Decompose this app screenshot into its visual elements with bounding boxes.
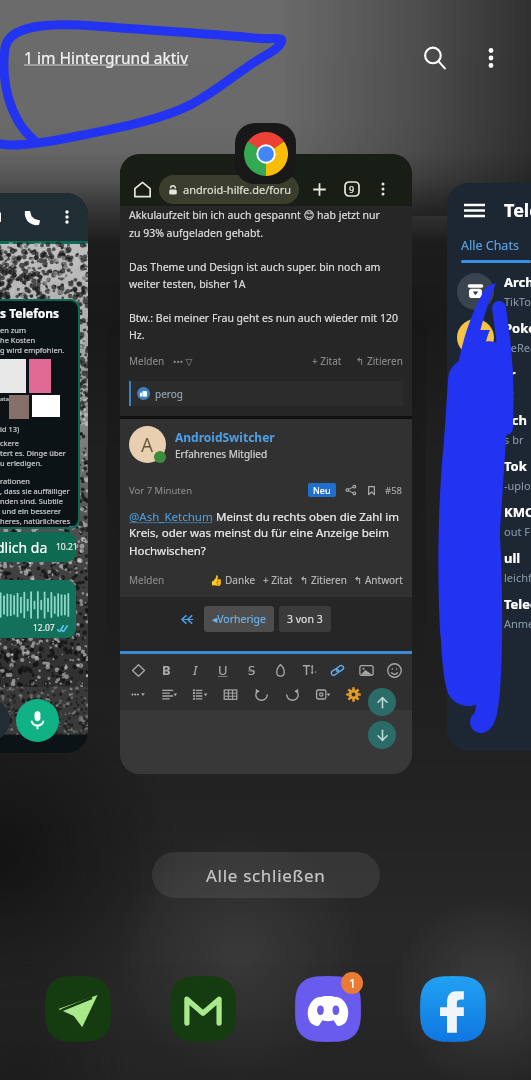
staticText: 9 <box>349 183 355 195</box>
button[interactable]: ach <box>457 406 531 452</box>
staticText: 👍 Danke <box>210 573 256 587</box>
button[interactable]: Archiviert <box>457 268 531 314</box>
button[interactable]: More options <box>465 32 517 84</box>
staticText: android-hilfe.de/foru <box>183 182 292 197</box>
staticText: TikTok: Di <box>504 294 531 309</box>
button[interactable]: Chrome menu <box>372 178 394 200</box>
staticText: Archiviert <box>504 273 531 291</box>
staticText: Akkulaufzeit bin ich auch gespannt 😊 hab… <box>129 208 398 342</box>
staticText: ckere tert es. Dinge über u erledigen. <box>0 438 66 468</box>
button[interactable]: Editor tool <box>282 684 302 704</box>
staticText: s br <box>504 432 524 447</box>
button[interactable]: Editor tool <box>313 684 333 704</box>
staticText: ull <box>504 549 521 567</box>
button[interactable]: S <box>242 660 262 680</box>
button[interactable]: Editor tool <box>128 684 148 704</box>
button[interactable]: android-hilfe.de/foru <box>159 175 299 204</box>
staticText: + Zitat <box>263 573 293 587</box>
staticText: leichfa <box>504 570 531 585</box>
staticText: S <box>248 661 256 679</box>
staticText: Poke <box>504 319 531 337</box>
button[interactable]: Tabs <box>340 177 364 201</box>
staticText: ↰ Zitieren <box>300 573 347 587</box>
staticText: I <box>193 661 198 679</box>
button[interactable]: Telegram <box>43 974 113 1044</box>
button[interactable]: New tab <box>307 177 331 201</box>
staticText: 3 von 3 <box>287 612 323 626</box>
staticText: Telegram <box>504 198 531 223</box>
button[interactable]: Tok <box>457 452 531 498</box>
button[interactable]: Search <box>409 32 461 84</box>
staticText: s Telefons <box>0 305 60 321</box>
button[interactable]: Editor tool <box>327 660 347 680</box>
staticText: Tok <box>504 457 527 475</box>
staticText: Anmeld <box>504 616 531 631</box>
staticText: A <box>141 432 154 458</box>
button[interactable]: Scroll up <box>368 688 396 716</box>
staticText: tr <box>504 365 516 383</box>
button[interactable]: I <box>185 660 205 680</box>
button[interactable]: Gmail <box>168 974 238 1044</box>
button[interactable]: Editor tool <box>251 684 271 704</box>
button[interactable]: Scroll down <box>368 721 396 749</box>
staticText: en zum he Kosten g wird empfohlen. <box>0 325 65 355</box>
staticText: 1 im Hintergrund aktiv <box>24 47 189 68</box>
button[interactable]: ◂Vorherige <box>204 606 274 632</box>
button[interactable]: Editor tool <box>220 684 240 704</box>
staticText: 12.07 <box>33 622 57 634</box>
button[interactable]: Editor tool <box>299 660 319 680</box>
button[interactable]: Record voice message <box>16 699 59 742</box>
button[interactable]: Telegra <box>457 590 531 636</box>
button[interactable]: Chrome <box>235 123 296 184</box>
staticText: ↰ Zitieren <box>356 354 403 368</box>
button[interactable]: tr <box>457 360 531 406</box>
staticText: ach <box>504 411 527 429</box>
button[interactable]: Home <box>120 154 412 774</box>
staticText: Erfahrenes Mitglied <box>175 447 268 461</box>
button[interactable]: ull <box>457 544 531 590</box>
button[interactable]: Poke <box>457 314 531 360</box>
staticText: + Zitat <box>312 354 342 368</box>
button[interactable]: KMO <box>457 498 531 544</box>
staticText: B <box>162 661 171 679</box>
staticText: rationen , dass sie auffälliger nden sin… <box>0 476 74 527</box>
staticText: Neu <box>313 484 331 496</box>
button[interactable]: Editor tool <box>343 684 363 704</box>
staticText: ••• ▽ <box>173 355 193 367</box>
staticText: ata <box>0 395 9 403</box>
staticText: Kreis, oder was meinst du für eine Anzei… <box>129 525 390 558</box>
button[interactable]: Editor tool <box>356 660 376 680</box>
button[interactable]: Editor tool <box>384 660 404 680</box>
button[interactable]: Menu <box>447 183 531 751</box>
button[interactable]: Editor tool <box>270 660 290 680</box>
staticText: 1 <box>349 975 356 991</box>
button[interactable]: Menu <box>462 198 486 222</box>
button[interactable]: B <box>156 660 176 680</box>
staticText: perog <box>155 387 183 401</box>
button[interactable]: Alle schließen <box>152 852 380 898</box>
button[interactable]: Editor tool <box>159 684 179 704</box>
staticText: ↰ Antwort <box>354 573 403 587</box>
staticText: @Ash_Ketchum <box>129 509 213 525</box>
staticText: Alle schließen <box>206 864 326 887</box>
staticText: out F <box>504 524 530 539</box>
staticText: KMO <box>504 503 531 521</box>
staticText: Melden <box>129 354 165 368</box>
button[interactable]: Discord <box>293 974 363 1044</box>
staticText: Telegra <box>504 595 531 613</box>
staticText: ty <box>504 386 514 401</box>
button[interactable]: Editor tool <box>190 684 210 704</box>
button[interactable]: Editor tool <box>128 660 148 680</box>
button[interactable]: U <box>213 660 233 680</box>
button[interactable]: 1 im Hintergrund aktiv <box>24 47 189 68</box>
staticText: Meinst du rechts oben die Zahl im <box>213 509 400 525</box>
button[interactable]: s Telefons <box>0 193 88 753</box>
button[interactable]: 3 von 3 <box>279 606 331 632</box>
staticText: Vor 7 Minuten <box>129 484 193 497</box>
staticText: ◂Vorherige <box>212 612 266 626</box>
staticText: Alle Chats <box>461 237 519 254</box>
button[interactable]: Facebook <box>418 974 488 1044</box>
staticText: -uplo <box>504 478 531 493</box>
button[interactable]: Home <box>129 176 155 202</box>
staticText: #58 <box>385 484 403 497</box>
